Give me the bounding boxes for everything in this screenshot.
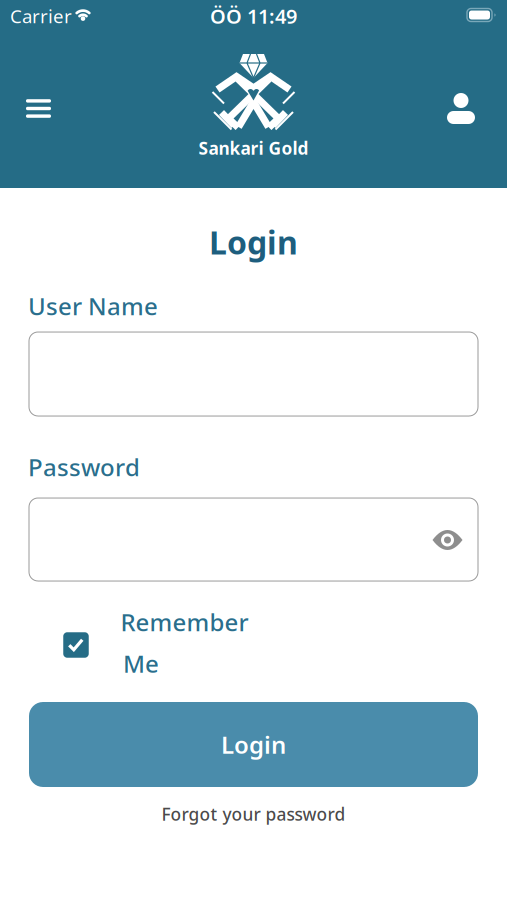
button[interactable]: User Name (29, 332, 478, 416)
staticText: Login (209, 221, 298, 263)
button[interactable]: Password (29, 498, 478, 581)
button[interactable]: Forgot your password (161, 802, 345, 825)
staticText: ÖÖ 11:49 (210, 3, 297, 29)
button[interactable]: Login (29, 702, 478, 787)
staticText: Remember (120, 606, 248, 638)
staticText: User Name (28, 290, 158, 322)
button[interactable]: Show password (425, 518, 469, 562)
staticText: Password (28, 451, 140, 483)
staticText: Me (123, 648, 159, 679)
staticText: Forgot your password (161, 802, 345, 825)
staticText: Carrier (10, 4, 72, 28)
staticText: Login (221, 729, 286, 760)
button[interactable]: Remember (55, 610, 245, 680)
staticText: Sankari Gold (198, 136, 308, 159)
button[interactable]: Account (441, 87, 481, 130)
button[interactable]: Menu (20, 93, 57, 124)
